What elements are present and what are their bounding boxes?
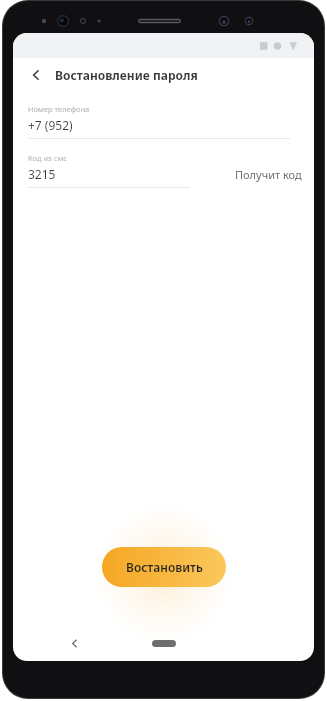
staticText: 3215: [28, 166, 56, 182]
staticText: Код из смс: [28, 153, 67, 163]
button[interactable]: Back: [63, 632, 85, 654]
staticText: Номер телефона: [28, 104, 90, 114]
button[interactable]: Home: [152, 640, 176, 647]
staticText: Получит код: [235, 167, 302, 182]
button[interactable]: Востановить: [102, 547, 226, 587]
button[interactable]: Номер телефона: [28, 104, 302, 139]
staticText: +7 (952): [28, 117, 73, 133]
button[interactable]: Back: [23, 62, 49, 88]
staticText: Востановление пароля: [55, 67, 198, 83]
button[interactable]: Получит код: [233, 163, 304, 186]
staticText: Востановить: [126, 559, 203, 575]
button[interactable]: Код из смс: [28, 153, 302, 188]
